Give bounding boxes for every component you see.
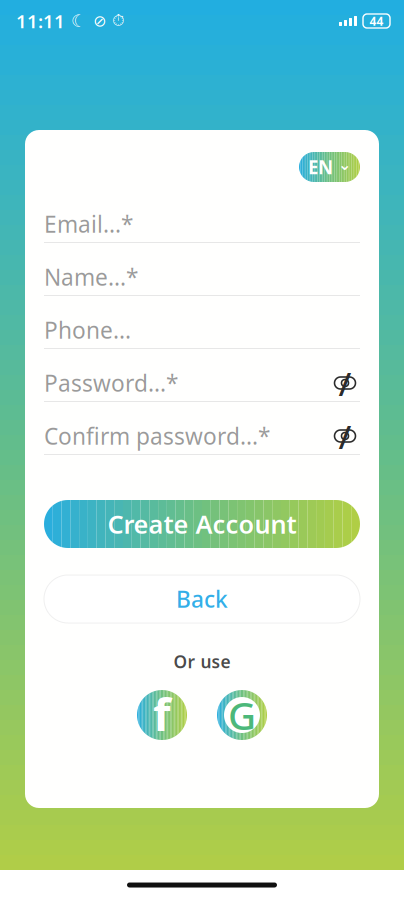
button[interactable]: Continue with Facebook	[137, 690, 187, 740]
staticText: Confirm password...*	[44, 421, 270, 451]
staticText: ⊘	[93, 12, 106, 30]
button[interactable]: Back	[44, 575, 360, 623]
staticText: Email...*	[44, 209, 133, 239]
staticText: 11:11	[16, 9, 65, 33]
staticText: /	[338, 361, 351, 405]
staticText: ⏱	[112, 13, 124, 29]
staticText: EN	[308, 155, 333, 179]
button[interactable]: Show password	[330, 421, 360, 451]
staticText: Create Account	[107, 507, 296, 541]
staticText: Password...*	[44, 368, 178, 398]
staticText: Back	[176, 584, 228, 614]
staticText: Or use	[173, 650, 230, 673]
staticText: f	[153, 683, 171, 744]
staticText: ☾	[71, 11, 87, 31]
staticText: ⌄	[338, 155, 351, 174]
staticText: 44	[369, 13, 383, 29]
staticText: G	[228, 689, 256, 741]
button[interactable]: Continue with Google	[217, 690, 267, 740]
staticText: /	[338, 414, 351, 458]
staticText: Phone...	[44, 315, 131, 345]
button[interactable]: Select language, English	[299, 152, 360, 182]
staticText: Name...*	[44, 262, 138, 292]
button[interactable]: Create Account	[44, 500, 360, 548]
button[interactable]: Show password	[330, 368, 360, 398]
